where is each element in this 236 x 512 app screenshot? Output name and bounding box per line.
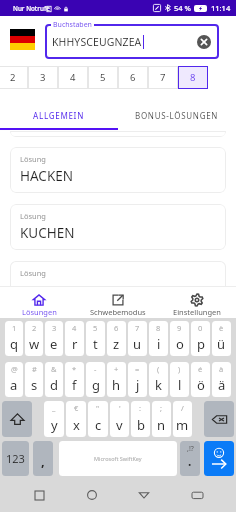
button[interactable]: ' bbox=[110, 401, 129, 437]
button[interactable]: / bbox=[173, 401, 192, 437]
button[interactable]: 8 bbox=[149, 321, 168, 356]
button[interactable]: 5 bbox=[86, 321, 105, 356]
button[interactable]: 3 bbox=[28, 66, 58, 89]
staticText: z bbox=[113, 335, 120, 353]
staticText: + bbox=[114, 364, 119, 374]
button[interactable]: 4 bbox=[58, 66, 88, 89]
staticText: 9 bbox=[177, 323, 182, 333]
staticText: g bbox=[92, 376, 100, 394]
staticText: _ bbox=[52, 403, 56, 413]
button[interactable]: à bbox=[212, 362, 231, 397]
button[interactable]: " bbox=[88, 401, 108, 437]
button[interactable]: Leertaste bbox=[59, 441, 177, 476]
button[interactable]: 1 bbox=[5, 321, 23, 356]
staticText: € bbox=[74, 403, 79, 413]
button[interactable]: 6 bbox=[107, 321, 126, 356]
button[interactable]: 6 bbox=[118, 66, 148, 89]
button[interactable]: _ bbox=[44, 401, 64, 437]
staticText: Lösung bbox=[20, 154, 46, 164]
button[interactable]: Eingabetaste bbox=[204, 441, 234, 476]
staticText: h bbox=[112, 376, 121, 394]
button[interactable]: Letzte Apps bbox=[26, 482, 52, 508]
button[interactable]: Umschalt bbox=[2, 401, 32, 437]
button[interactable]: # bbox=[25, 362, 43, 397]
staticText: ALLGEMEIN bbox=[33, 110, 85, 121]
staticText: # bbox=[32, 364, 37, 374]
staticText: HACKEN bbox=[20, 167, 74, 185]
staticText: p bbox=[197, 335, 205, 353]
button[interactable]: Löschen bbox=[204, 401, 234, 437]
staticText: 4 bbox=[72, 323, 77, 333]
button[interactable]: Tastatur ausblenden bbox=[184, 482, 210, 508]
button[interactable]: @ bbox=[5, 362, 23, 397]
button[interactable]: * bbox=[65, 362, 84, 397]
button[interactable]: 5 bbox=[88, 66, 118, 89]
button[interactable]: Lösung bbox=[10, 261, 226, 291]
button[interactable]: Zurück bbox=[131, 482, 157, 508]
staticText: 54 % bbox=[174, 3, 191, 13]
staticText: / bbox=[181, 403, 184, 413]
staticText: s bbox=[31, 376, 38, 394]
button[interactable]: 123 bbox=[2, 441, 29, 476]
staticText: è bbox=[219, 323, 224, 333]
button[interactable]: = bbox=[128, 362, 147, 397]
button[interactable]: : bbox=[131, 401, 150, 437]
button[interactable]: Lösung bbox=[10, 147, 226, 193]
staticText: 6 bbox=[114, 323, 119, 333]
button[interactable]: 2 bbox=[25, 321, 43, 356]
staticText: ) bbox=[178, 364, 181, 374]
button[interactable]: € bbox=[66, 401, 86, 437]
staticText: : bbox=[139, 403, 142, 413]
button[interactable]: Sprache Deutsch bbox=[10, 29, 35, 50]
button[interactable]: Einstellungen bbox=[157, 290, 236, 321]
button[interactable]: - bbox=[86, 362, 105, 397]
button[interactable]: & bbox=[45, 362, 63, 397]
staticText: Lösung bbox=[20, 211, 46, 221]
button[interactable]: ; bbox=[152, 401, 171, 437]
button[interactable]: Lösungen bbox=[0, 290, 78, 321]
staticText: l bbox=[178, 376, 182, 394]
staticText: * bbox=[72, 364, 77, 374]
button[interactable]: ALLGEMEIN bbox=[0, 100, 118, 130]
staticText: à bbox=[219, 364, 224, 374]
staticText: 7 bbox=[160, 71, 166, 84]
staticText: " bbox=[96, 403, 100, 413]
button[interactable]: Startbildschirm bbox=[79, 482, 105, 508]
staticText: ä bbox=[218, 376, 226, 394]
staticText: 1 bbox=[12, 323, 17, 333]
staticText: 4 bbox=[70, 71, 76, 84]
button[interactable]: 7 bbox=[128, 321, 147, 356]
button[interactable]: ,!? bbox=[180, 441, 200, 476]
button[interactable]: KHHYSCEUGNZEA bbox=[45, 24, 219, 59]
staticText: 8 bbox=[156, 323, 161, 333]
staticText: 0 bbox=[198, 323, 203, 333]
button[interactable]: 9 bbox=[170, 321, 189, 356]
button[interactable]: BONUS-LÖSUNGEN bbox=[118, 100, 236, 130]
staticText: ü bbox=[217, 335, 226, 353]
staticText: ' bbox=[119, 403, 121, 413]
button[interactable]: 0 bbox=[191, 321, 210, 356]
button[interactable]: + bbox=[107, 362, 126, 397]
staticText: 7 bbox=[135, 323, 140, 333]
button[interactable]: è bbox=[212, 321, 231, 356]
button[interactable]: 8 bbox=[178, 66, 208, 89]
button[interactable]: é bbox=[191, 362, 210, 397]
staticText: c bbox=[95, 416, 102, 434]
button[interactable]: 2 bbox=[0, 66, 28, 89]
staticText: f bbox=[72, 376, 77, 394]
staticText: w bbox=[29, 335, 40, 353]
button[interactable]: 7 bbox=[148, 66, 178, 89]
button[interactable]: Lösung bbox=[10, 204, 226, 250]
button[interactable]: Schwebemodus bbox=[78, 290, 157, 321]
staticText: ö bbox=[197, 376, 205, 394]
staticText: ( bbox=[157, 364, 160, 374]
staticText: Nur Notrufe bbox=[13, 4, 50, 13]
staticText: Buchstaben bbox=[53, 20, 92, 30]
button[interactable]: , bbox=[33, 441, 53, 476]
button[interactable]: ( bbox=[149, 362, 168, 397]
staticText: q bbox=[10, 335, 18, 353]
button[interactable]: ) bbox=[170, 362, 189, 397]
button[interactable]: 4 bbox=[65, 321, 84, 356]
button[interactable]: 3 bbox=[45, 321, 63, 356]
button[interactable]: Eingabe löschen bbox=[197, 35, 211, 49]
